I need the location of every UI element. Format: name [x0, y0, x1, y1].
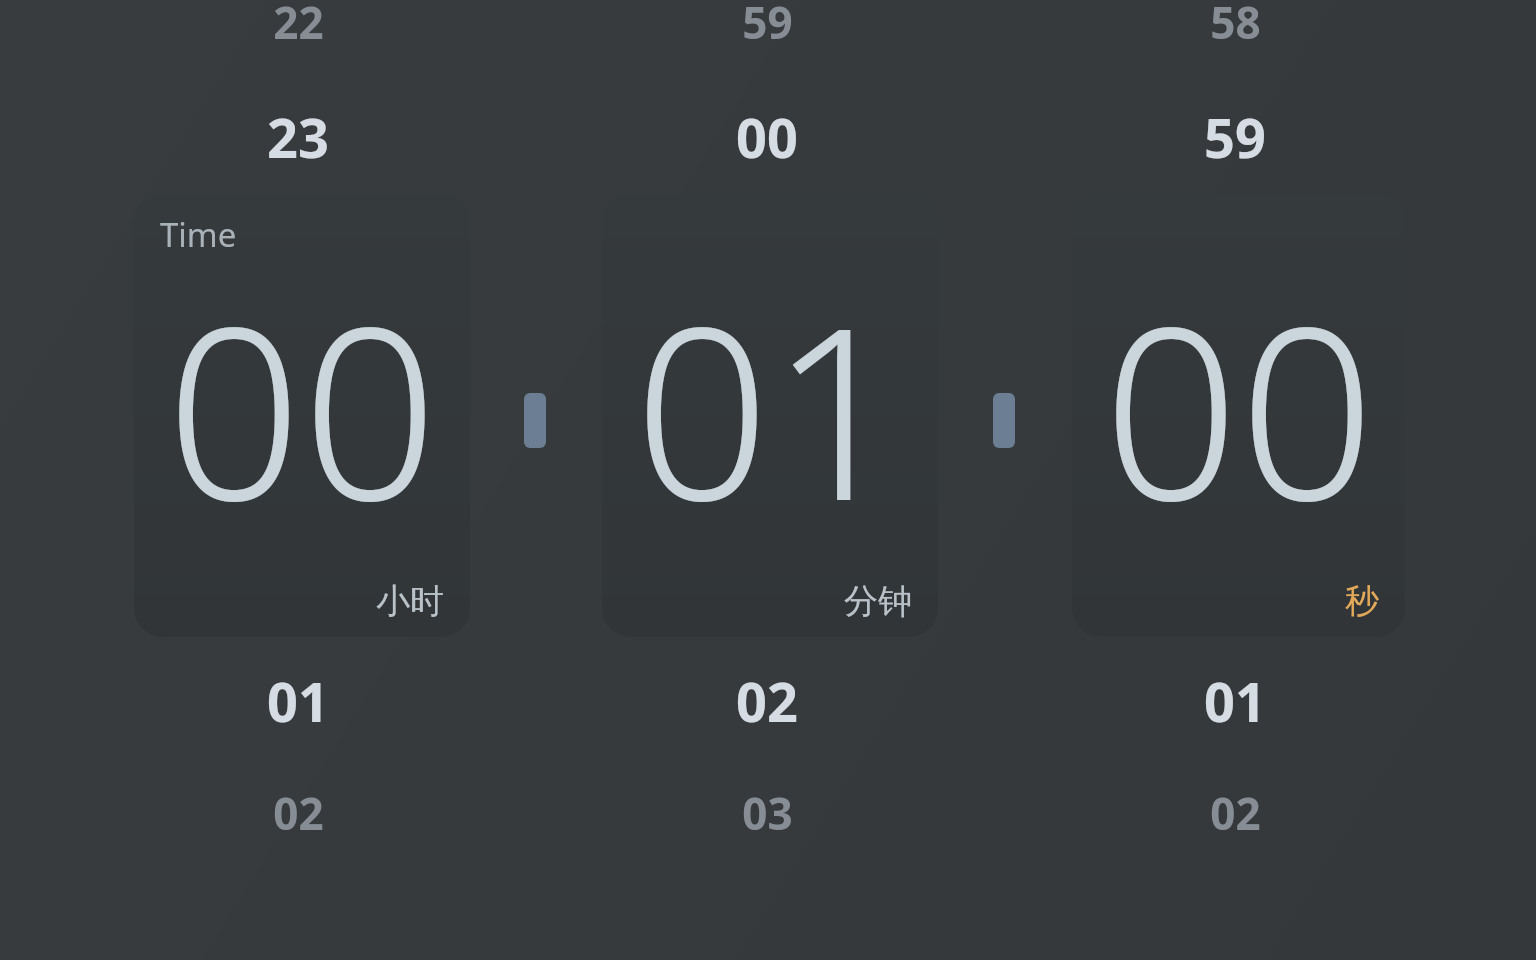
button[interactable]: Time — [134, 194, 470, 637]
staticText: 02 — [273, 783, 324, 843]
staticText: 02 — [1210, 783, 1261, 843]
staticText: 分钟 — [844, 580, 912, 623]
staticText: Time — [160, 212, 237, 257]
button[interactable]: 00 — [1072, 194, 1405, 637]
staticText: 01 — [1204, 664, 1266, 738]
staticText: 59 — [1204, 100, 1266, 174]
staticText: 59 — [742, 0, 793, 52]
staticText: 01 — [634, 246, 906, 570]
staticText: 23 — [267, 100, 329, 174]
staticText: 58 — [1210, 0, 1261, 52]
staticText: 00 — [1103, 246, 1375, 570]
staticText: 01 — [267, 664, 329, 738]
staticText: 00 — [166, 246, 438, 570]
staticText: 00 — [736, 100, 798, 174]
staticText: 小时 — [376, 580, 444, 623]
staticText: 02 — [736, 664, 798, 738]
button[interactable]: 01 — [602, 194, 938, 637]
staticText: 03 — [742, 783, 793, 843]
staticText: 22 — [273, 0, 324, 52]
staticText: 秒 — [1345, 580, 1379, 623]
